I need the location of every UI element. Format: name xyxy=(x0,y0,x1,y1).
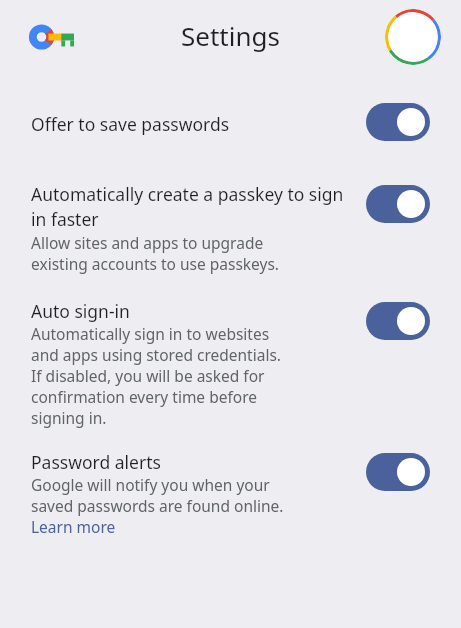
staticText: Settings xyxy=(181,18,280,53)
staticText: saved passwords are found online. xyxy=(31,495,284,516)
button[interactable]: Password alerts xyxy=(366,453,430,491)
staticText: signing in. xyxy=(31,407,107,428)
button[interactable]: Automatically create a passkey to sign i… xyxy=(0,150,461,274)
staticText: Offer to save passwords xyxy=(31,112,230,136)
button[interactable]: Offer to save passwords xyxy=(366,103,430,141)
button[interactable]: Password alerts xyxy=(0,428,461,537)
other: Google Password Manager xyxy=(28,22,74,52)
staticText: Google will notify you when your xyxy=(31,474,270,495)
staticText: If disabled, you will be asked for xyxy=(31,365,265,386)
button[interactable]: Automatically create a passkey to sign i… xyxy=(366,185,430,223)
staticText: Auto sign-in xyxy=(31,299,130,323)
staticText: confirmation every time before xyxy=(31,386,257,407)
staticText: Automatically sign in to websites xyxy=(31,323,270,344)
staticText: and apps using stored credentials. xyxy=(31,344,281,365)
staticText: Automatically create a passkey to sign i… xyxy=(31,182,350,232)
staticText: Password alerts xyxy=(31,450,161,474)
button[interactable]: Auto sign-in xyxy=(0,274,461,428)
button[interactable]: Account xyxy=(385,9,441,65)
button[interactable]: Offer to save passwords xyxy=(0,78,461,150)
staticText: Allow sites and apps to upgrade xyxy=(31,232,264,253)
staticText: existing accounts to use passkeys. xyxy=(31,253,280,274)
button[interactable]: Auto sign-in xyxy=(366,302,430,340)
button[interactable]: Learn more xyxy=(31,516,116,537)
